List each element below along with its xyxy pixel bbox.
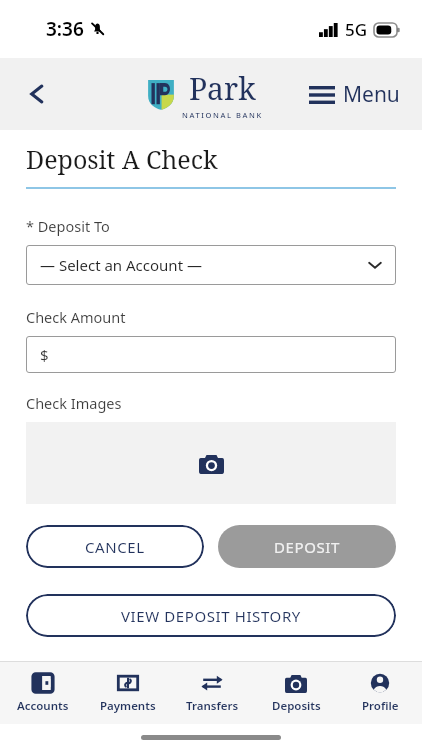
staticText: DEPOSIT: [274, 537, 340, 557]
staticText: 3:36: [46, 16, 84, 42]
staticText: 5G: [345, 18, 368, 41]
staticText: Accounts: [17, 698, 69, 714]
staticText: $: [40, 345, 49, 365]
button[interactable]: — Select an Account —: [26, 245, 396, 285]
staticText: Deposits: [272, 698, 321, 714]
staticText: Check Images: [26, 393, 122, 413]
button[interactable]: DEPOSIT: [218, 525, 396, 568]
button[interactable]: Back: [14, 71, 60, 117]
button[interactable]: $: [26, 336, 396, 373]
button[interactable]: Transfers: [170, 662, 254, 724]
staticText: NATIONAL BANK: [182, 110, 263, 120]
button[interactable]: Menu: [303, 74, 406, 115]
staticText: Deposit A Check: [26, 142, 218, 176]
staticText: Check Amount: [26, 307, 126, 327]
button[interactable]: CANCEL: [26, 525, 204, 568]
staticText: Park: [189, 68, 256, 109]
staticText: Menu: [343, 80, 400, 109]
staticText: Profile: [362, 698, 399, 714]
staticText: CANCEL: [85, 537, 145, 557]
staticText: — Select an Account —: [40, 255, 202, 275]
button[interactable]: Profile: [338, 662, 422, 724]
button[interactable]: VIEW DEPOSIT HISTORY: [26, 594, 396, 637]
button[interactable]: Capture check image: [26, 422, 396, 504]
staticText: Transfers: [186, 698, 239, 714]
button[interactable]: Payments: [85, 662, 170, 724]
staticText: VIEW DEPOSIT HISTORY: [121, 606, 301, 626]
button[interactable]: Accounts: [0, 662, 85, 724]
staticText: * Deposit To: [26, 216, 110, 236]
button[interactable]: Deposits: [254, 662, 338, 724]
staticText: Payments: [100, 698, 156, 714]
